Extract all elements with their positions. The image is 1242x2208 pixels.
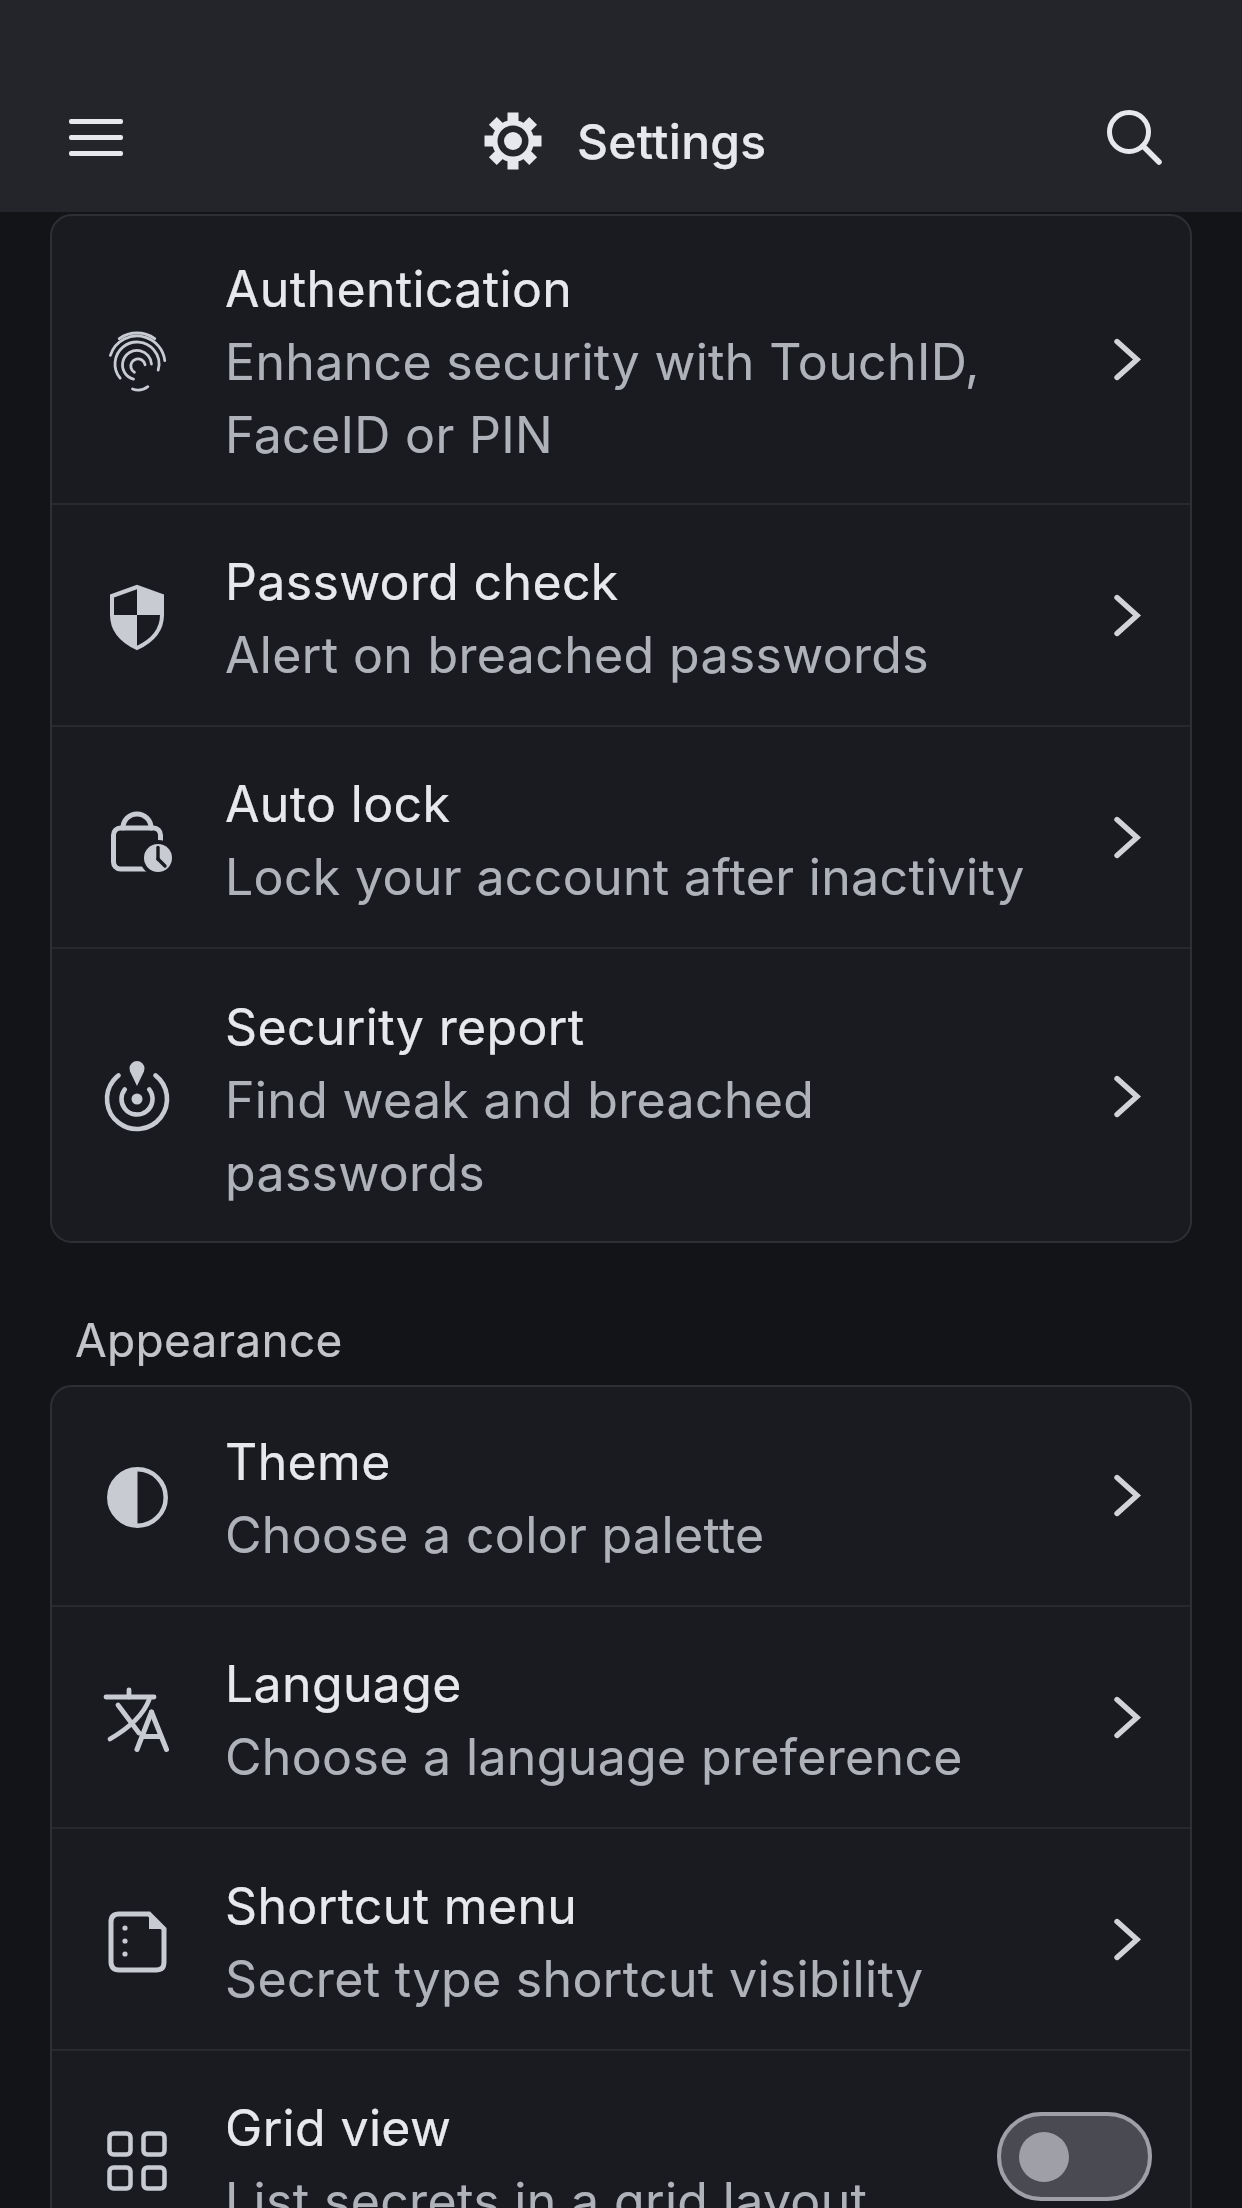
button[interactable]: Shortcut menu Secret type shortcut visib… xyxy=(50,1829,1192,2049)
button[interactable] xyxy=(69,119,123,156)
button[interactable]: Auto lock Lock your account after inacti… xyxy=(50,727,1192,947)
staticText: Shortcut menu Secret type shortcut visib… xyxy=(225,1876,924,2010)
staticText: Settings xyxy=(577,112,767,170)
button[interactable]: Theme Choose a color palette xyxy=(50,1385,1192,1605)
staticText: Security report Find weak and breached p… xyxy=(225,997,815,1204)
staticText: Authentication Enhance security with Tou… xyxy=(225,259,980,466)
button[interactable] xyxy=(997,2112,1152,2201)
button[interactable]: Security report Find weak and breached p… xyxy=(50,949,1192,1243)
staticText: Appearance xyxy=(75,1312,343,1368)
staticText: Password check Alert on breached passwor… xyxy=(225,552,930,686)
staticText: Language Choose a language preference xyxy=(225,1654,963,1788)
button[interactable]: Password check Alert on breached passwor… xyxy=(50,505,1192,725)
staticText: Auto lock Lock your account after inacti… xyxy=(225,774,1025,908)
button[interactable]: Authentication Enhance security with Tou… xyxy=(50,214,1192,503)
staticText: Theme Choose a color palette xyxy=(225,1432,765,1566)
button[interactable]: Language Choose a language preference xyxy=(50,1607,1192,1827)
button[interactable] xyxy=(1103,107,1161,165)
button[interactable]: Grid view List secrets in a grid layout xyxy=(50,2051,1192,2208)
staticText: Grid view List secrets in a grid layout xyxy=(225,2098,868,2208)
